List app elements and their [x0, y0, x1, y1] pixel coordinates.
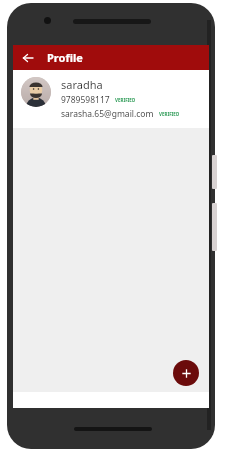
button[interactable]: Back [17, 47, 39, 69]
staticText: 9789598117 [61, 94, 110, 106]
staticText: VERIFIED [115, 97, 136, 103]
button[interactable]: Add [173, 360, 199, 386]
staticText: saradha [61, 77, 103, 92]
staticText: sarasha.65@gmail.com [61, 108, 154, 120]
button[interactable]: saradha [13, 70, 209, 128]
staticText: Profile [47, 50, 83, 65]
staticText: VERIFIED [159, 111, 180, 117]
other: Power button [212, 155, 217, 189]
other: Volume button [212, 203, 217, 251]
